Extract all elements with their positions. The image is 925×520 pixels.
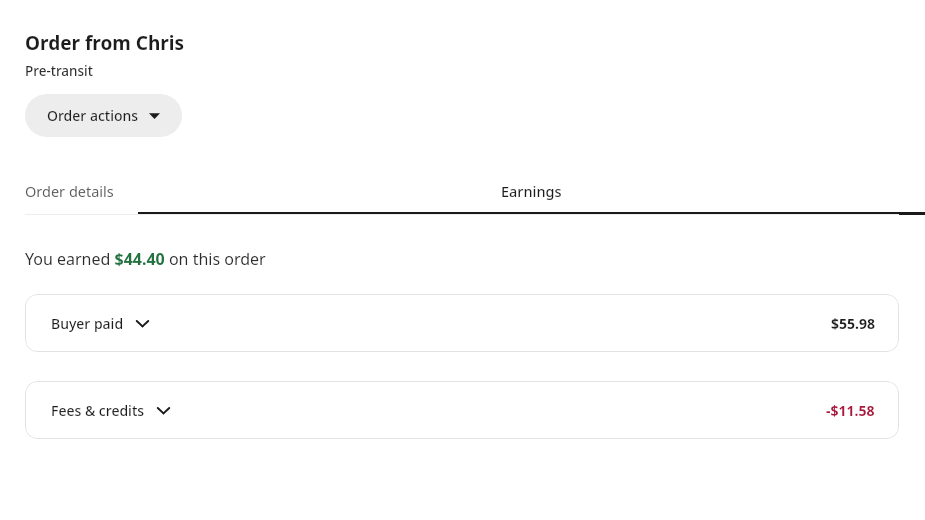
staticText: Earnings	[501, 181, 562, 201]
button[interactable]: Fees & credits	[25, 381, 899, 439]
staticText: You earned $44.40 on this order	[25, 248, 266, 270]
other: Open order actions menu	[149, 112, 160, 119]
staticText: Order details	[25, 181, 114, 201]
other: Expand	[157, 406, 170, 415]
staticText: Fees & credits	[51, 401, 145, 420]
button[interactable]: Order details	[25, 181, 114, 215]
button[interactable]: Buyer paid	[25, 294, 899, 352]
other: Expand	[136, 319, 149, 328]
button[interactable]: Earnings	[138, 181, 925, 215]
staticText: Buyer paid	[51, 314, 124, 333]
button[interactable]: Order actions	[25, 94, 182, 137]
staticText: Order from Chris	[25, 30, 184, 56]
staticText: $55.98	[831, 314, 875, 333]
staticText: -$11.58	[826, 401, 875, 420]
staticText: Order actions	[47, 106, 139, 125]
staticText: Pre-transit	[25, 62, 93, 80]
